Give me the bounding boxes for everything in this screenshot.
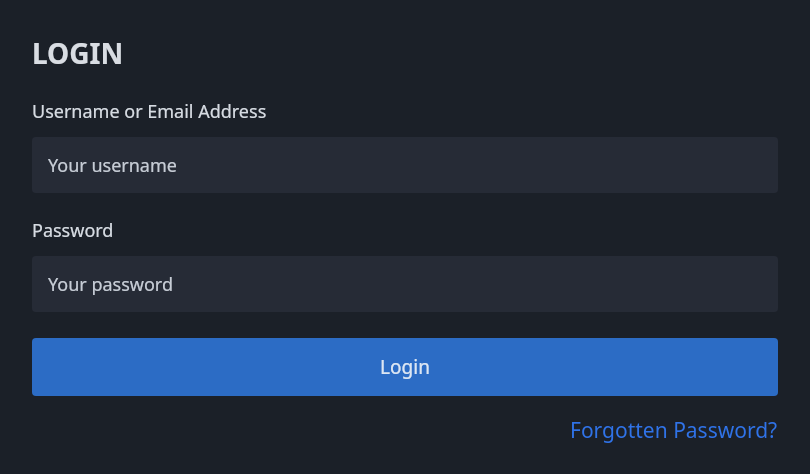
staticText: LOGIN — [32, 34, 124, 72]
staticText: Your password — [48, 272, 174, 297]
button[interactable]: Login — [32, 338, 778, 396]
button[interactable]: Forgotten Password — [570, 412, 778, 449]
staticText: Username or Email Address — [32, 99, 267, 124]
staticText: Your username — [48, 153, 177, 178]
staticText: Password — [32, 218, 114, 243]
staticText: Login — [380, 354, 430, 380]
button[interactable]: Your username — [32, 137, 778, 193]
button[interactable]: Your password — [32, 256, 778, 312]
staticText: Forgotten Password? — [570, 416, 778, 445]
